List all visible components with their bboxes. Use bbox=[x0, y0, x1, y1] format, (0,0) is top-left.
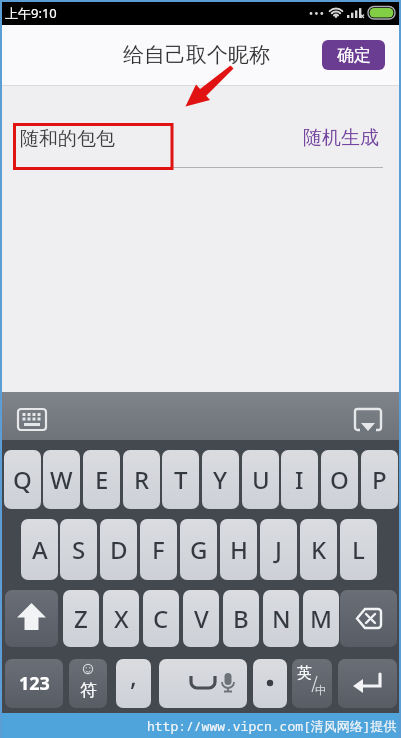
staticText: 上午9:10 bbox=[5, 4, 57, 22]
button[interactable]: Y bbox=[202, 450, 239, 509]
staticText: D bbox=[110, 533, 128, 566]
button[interactable]: 确定 bbox=[322, 40, 385, 70]
staticText: R bbox=[134, 463, 150, 496]
staticText: 中 bbox=[315, 683, 326, 697]
staticText: 符 bbox=[80, 680, 97, 701]
staticText: T bbox=[174, 463, 188, 496]
staticText: O bbox=[330, 463, 349, 496]
staticText: U bbox=[252, 463, 270, 496]
staticText: F bbox=[152, 533, 165, 566]
button[interactable]: D bbox=[100, 519, 137, 580]
button[interactable] bbox=[0, 392, 60, 440]
button[interactable]: Z bbox=[63, 590, 99, 647]
button[interactable]: F bbox=[140, 519, 177, 580]
staticText: Q bbox=[13, 463, 32, 496]
staticText: N bbox=[272, 602, 291, 635]
staticText: B bbox=[233, 602, 249, 635]
staticText: http://www.vipcn.com[清风网络]提供 bbox=[147, 717, 397, 735]
button[interactable]: W bbox=[43, 450, 80, 509]
button[interactable]: A bbox=[21, 519, 58, 580]
button[interactable]: I bbox=[281, 450, 318, 509]
staticText: G bbox=[190, 533, 208, 566]
button[interactable]: P bbox=[361, 450, 398, 509]
button[interactable]: S bbox=[60, 519, 97, 580]
staticText: H bbox=[230, 533, 248, 566]
staticText: 给自己取个昵称 bbox=[123, 42, 270, 68]
button[interactable]: 符 bbox=[69, 659, 107, 708]
button[interactable] bbox=[338, 659, 397, 708]
button[interactable] bbox=[253, 659, 287, 708]
staticText: S bbox=[72, 533, 86, 566]
staticText: A bbox=[32, 533, 48, 566]
staticText: W bbox=[50, 463, 73, 496]
staticText: V bbox=[194, 602, 209, 635]
staticText: X bbox=[114, 602, 129, 635]
staticText: M bbox=[310, 602, 333, 635]
button[interactable]: L bbox=[340, 519, 377, 580]
button[interactable]: 英 bbox=[292, 659, 332, 708]
button[interactable]: K bbox=[300, 519, 337, 580]
button[interactable] bbox=[159, 659, 247, 708]
staticText: , bbox=[130, 659, 137, 693]
staticText: 确定 bbox=[337, 45, 371, 66]
button[interactable]: N bbox=[263, 590, 299, 647]
staticText: 123 bbox=[19, 671, 50, 696]
button[interactable]: J bbox=[260, 519, 297, 580]
button[interactable]: C bbox=[143, 590, 179, 647]
button[interactable] bbox=[341, 392, 401, 440]
button[interactable] bbox=[5, 590, 58, 647]
staticText: 英 bbox=[297, 664, 312, 683]
button[interactable]: , bbox=[116, 659, 151, 708]
button[interactable]: T bbox=[162, 450, 199, 509]
button[interactable]: V bbox=[183, 590, 219, 647]
staticText: P bbox=[372, 463, 387, 496]
button[interactable]: X bbox=[103, 590, 139, 647]
staticText: I bbox=[295, 463, 304, 496]
button[interactable]: H bbox=[220, 519, 257, 580]
button[interactable]: E bbox=[83, 450, 120, 509]
button[interactable]: G bbox=[180, 519, 217, 580]
button[interactable]: M bbox=[303, 590, 339, 647]
staticText: 随和的包包 bbox=[20, 127, 115, 151]
staticText: J bbox=[275, 533, 282, 566]
staticText: Z bbox=[74, 602, 88, 635]
staticText: C bbox=[153, 602, 169, 635]
button[interactable]: R bbox=[123, 450, 160, 509]
staticText: K bbox=[311, 533, 327, 566]
button[interactable]: 随机生成 bbox=[303, 126, 379, 150]
button[interactable]: Q bbox=[4, 450, 41, 509]
button[interactable]: B bbox=[223, 590, 259, 647]
button[interactable]: U bbox=[242, 450, 279, 509]
button[interactable]: O bbox=[321, 450, 358, 509]
button[interactable] bbox=[340, 590, 397, 647]
staticText: L bbox=[352, 533, 365, 566]
button[interactable]: 123 bbox=[5, 659, 63, 708]
staticText: Y bbox=[213, 463, 228, 496]
staticText: E bbox=[95, 463, 109, 496]
